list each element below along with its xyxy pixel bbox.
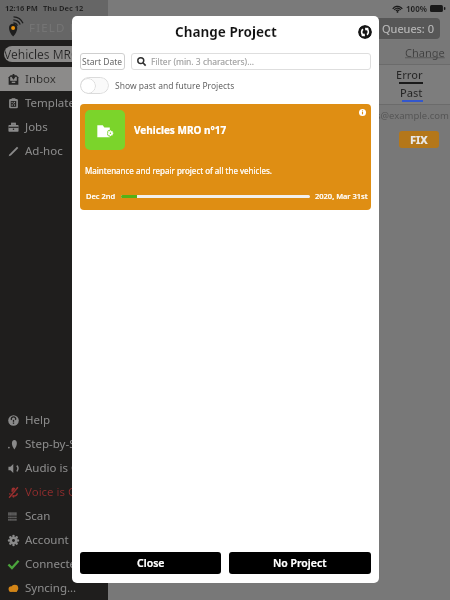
staticText: Show past and future Projects [115, 80, 235, 92]
button[interactable]: Help [0, 408, 108, 432]
button[interactable]: Show past and future Projects [80, 77, 379, 94]
staticText: aderiks@example.com [348, 109, 449, 122]
staticText: 12:16 PM [5, 3, 38, 13]
button[interactable]: Start Date [80, 53, 125, 70]
staticText: Jobs [25, 119, 48, 135]
button[interactable]: Vehicles MRO n°17 [80, 104, 371, 210]
staticText: Vehicles MRO n°17 [134, 123, 227, 137]
staticText: Ad-hoc [25, 143, 63, 159]
staticText: 2020, Mar 31st [315, 191, 368, 201]
button[interactable]: Close [80, 552, 221, 574]
button[interactable]: Step-by-Step [0, 432, 108, 456]
button[interactable]: Templates [0, 91, 108, 115]
button[interactable]: Scan [0, 504, 108, 528]
staticText: Audio is On [25, 460, 87, 476]
button[interactable]: Queues: 0 [364, 18, 440, 39]
staticText: Voice is Off [25, 484, 85, 500]
staticText: Change Project [175, 23, 277, 41]
button[interactable]: Voice is Off [0, 480, 108, 504]
button[interactable]: Account Settings [0, 528, 108, 552]
staticText: Connected [25, 556, 84, 572]
staticText: Thu Dec 12 [43, 3, 84, 13]
button[interactable]: No Project [229, 552, 371, 574]
staticText: Dec 2nd [86, 191, 116, 201]
staticText: Inbox [25, 71, 56, 87]
staticText: Account Settings [25, 532, 108, 548]
staticText: No Project [273, 556, 327, 570]
staticText: Error [396, 67, 423, 82]
staticText: Help [25, 412, 51, 428]
staticText: Filter (min. 3 characters)... [151, 56, 255, 68]
button[interactable]: Ad-hoc [0, 139, 108, 163]
button[interactable]: Refresh [358, 25, 372, 39]
button[interactable]: FIX [399, 131, 439, 148]
staticText: Change [405, 45, 445, 60]
button[interactable]: Audio is On [0, 456, 108, 480]
button[interactable]: Inbox [0, 67, 108, 91]
button[interactable]: Vehicles MRO n°17 [4, 46, 106, 62]
staticText: 100% [406, 3, 427, 14]
button[interactable]: Connected [0, 552, 108, 576]
staticText: Templates [25, 95, 81, 111]
staticText: Queues: 0 [382, 21, 434, 36]
staticText: Close [137, 556, 165, 570]
staticText: FIELD LOGIC [29, 20, 111, 36]
staticText: Scan [25, 508, 51, 524]
staticText: Past [400, 85, 423, 100]
staticText: Syncing... [25, 580, 77, 596]
staticText: Maintenance and repair project of all th… [85, 165, 272, 176]
button[interactable]: Syncing... [0, 576, 108, 600]
staticText: FIX [410, 132, 428, 147]
button[interactable]: Filter (min. 3 characters)... [131, 53, 371, 70]
staticText: Start Date [82, 56, 123, 68]
staticText: Step-by-Step [25, 436, 94, 452]
staticText: Vehicles MRO n°17 [4, 46, 106, 62]
button[interactable]: Jobs [0, 115, 108, 139]
